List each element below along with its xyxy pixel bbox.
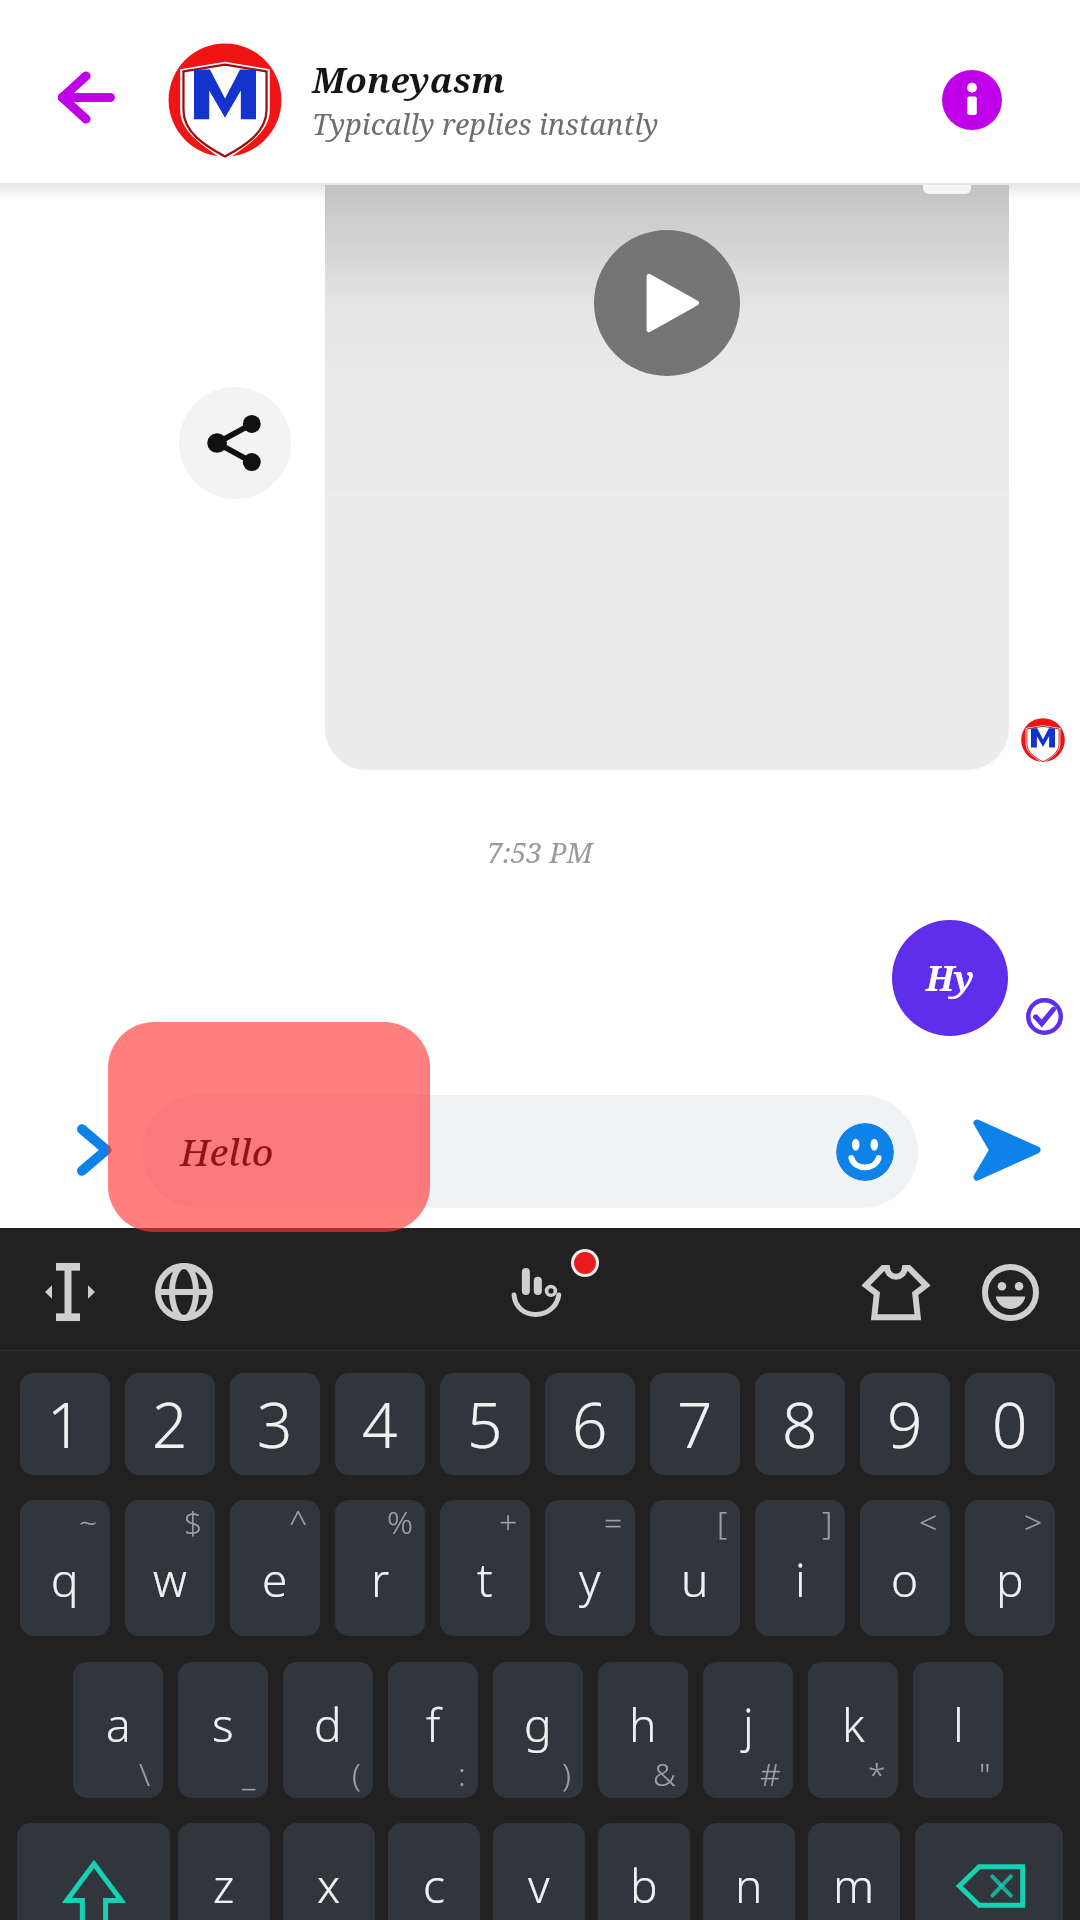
button[interactable]: " xyxy=(913,1662,1003,1798)
staticText: + xyxy=(499,1500,518,1544)
staticText: l xyxy=(953,1693,964,1756)
button[interactable]: 1 xyxy=(20,1373,110,1475)
staticText: x xyxy=(317,1854,341,1917)
button[interactable]: Hy xyxy=(892,920,1008,1036)
button[interactable]: = xyxy=(545,1500,635,1636)
button[interactable]: \ xyxy=(73,1662,163,1798)
button[interactable]: Keyboard theme xyxy=(836,1232,956,1352)
button[interactable]: Emoji keyboard xyxy=(950,1232,1070,1352)
button[interactable]: z xyxy=(178,1823,270,1920)
staticText: Hy xyxy=(926,955,974,1001)
button[interactable]: ~ xyxy=(20,1500,110,1636)
staticText: " xyxy=(979,1752,991,1796)
button[interactable]: Emoji xyxy=(142,1095,918,1208)
button[interactable]: 5 xyxy=(440,1373,530,1475)
button[interactable]: Backspace xyxy=(915,1823,1063,1920)
staticText: t xyxy=(477,1548,493,1611)
staticText: u xyxy=(681,1548,709,1611)
staticText: = xyxy=(604,1500,623,1544)
staticText: & xyxy=(653,1752,676,1796)
button[interactable]: 9 xyxy=(860,1373,950,1475)
button[interactable]: * xyxy=(808,1662,898,1798)
staticText: > xyxy=(1024,1500,1043,1544)
button[interactable]: $ xyxy=(125,1500,215,1636)
staticText: * xyxy=(868,1752,886,1796)
button[interactable]: Shift xyxy=(17,1823,170,1920)
button[interactable]: 4 xyxy=(335,1373,425,1475)
button[interactable]: _ xyxy=(178,1662,268,1798)
button[interactable]: Show more actions xyxy=(40,1095,150,1205)
staticText: 4 xyxy=(362,1382,398,1466)
button[interactable]: Switch language xyxy=(124,1232,244,1352)
staticText: z xyxy=(213,1854,235,1917)
staticText: # xyxy=(760,1752,781,1796)
staticText: ( xyxy=(352,1752,361,1796)
button[interactable]: % xyxy=(335,1500,425,1636)
staticText: o xyxy=(891,1548,919,1611)
button[interactable]: [ xyxy=(650,1500,740,1636)
staticText: 8 xyxy=(782,1382,818,1466)
button[interactable]: Voice typing xyxy=(479,1232,599,1352)
button[interactable]: ] xyxy=(755,1500,845,1636)
button[interactable]: Share xyxy=(179,387,291,499)
staticText: s xyxy=(212,1693,234,1756)
staticText: < xyxy=(919,1500,938,1544)
button[interactable]: & xyxy=(598,1662,688,1798)
staticText: 7 xyxy=(677,1382,713,1466)
button[interactable]: Back xyxy=(30,38,140,148)
button[interactable]: Moneyasm xyxy=(160,27,860,172)
button[interactable]: 6 xyxy=(545,1373,635,1475)
button[interactable]: 3 xyxy=(230,1373,320,1475)
button[interactable]: Conversation info xyxy=(918,46,1026,154)
staticText: [ xyxy=(717,1500,728,1544)
staticText: ) xyxy=(562,1752,571,1796)
button[interactable]: ^ xyxy=(230,1500,320,1636)
button[interactable]: > xyxy=(965,1500,1055,1636)
button[interactable]: v xyxy=(493,1823,585,1920)
staticText: d xyxy=(314,1693,342,1756)
staticText: Typically replies instantly xyxy=(312,104,659,143)
button[interactable]: ( xyxy=(283,1662,373,1798)
staticText: f xyxy=(426,1693,441,1756)
button[interactable]: # xyxy=(703,1662,793,1798)
button[interactable]: ) xyxy=(493,1662,583,1798)
staticText: ] xyxy=(822,1500,833,1544)
staticText: 2 xyxy=(152,1382,188,1466)
button[interactable]: Emoji xyxy=(836,1123,894,1181)
staticText: i xyxy=(795,1548,806,1611)
staticText: \ xyxy=(139,1752,151,1796)
button[interactable]: c xyxy=(388,1823,480,1920)
staticText: 3 xyxy=(257,1382,293,1466)
button[interactable]: 7 xyxy=(650,1373,740,1475)
button[interactable]: b xyxy=(598,1823,690,1920)
staticText: b xyxy=(630,1854,658,1917)
button[interactable]: m xyxy=(808,1823,900,1920)
staticText: 6 xyxy=(572,1382,608,1466)
button[interactable]: n xyxy=(703,1823,795,1920)
button[interactable]: Play video xyxy=(594,230,740,376)
staticText: r xyxy=(371,1548,390,1611)
staticText: ~ xyxy=(79,1500,98,1544)
button[interactable]: 8 xyxy=(755,1373,845,1475)
button[interactable]: Cursor control xyxy=(10,1232,130,1352)
button[interactable]: Send xyxy=(949,1093,1062,1206)
button[interactable]: 0 xyxy=(965,1373,1055,1475)
staticText: j xyxy=(743,1693,754,1756)
staticText: y xyxy=(579,1548,601,1611)
button[interactable]: Hello xyxy=(108,1022,430,1232)
staticText: k xyxy=(842,1693,865,1756)
button[interactable]: + xyxy=(440,1500,530,1636)
staticText: p xyxy=(996,1548,1024,1611)
staticText: 5 xyxy=(467,1382,503,1466)
staticText: v xyxy=(528,1854,550,1917)
button[interactable]: < xyxy=(860,1500,950,1636)
staticText: h xyxy=(629,1693,657,1756)
staticText: e xyxy=(262,1548,288,1611)
button[interactable]: x xyxy=(283,1823,375,1920)
button[interactable]: : xyxy=(388,1662,478,1798)
button[interactable]: 2 xyxy=(125,1373,215,1475)
staticText: Hello xyxy=(180,1126,274,1176)
staticText: 7:53 PM xyxy=(487,833,593,871)
staticText: % xyxy=(387,1500,413,1544)
staticText: : xyxy=(458,1752,466,1796)
